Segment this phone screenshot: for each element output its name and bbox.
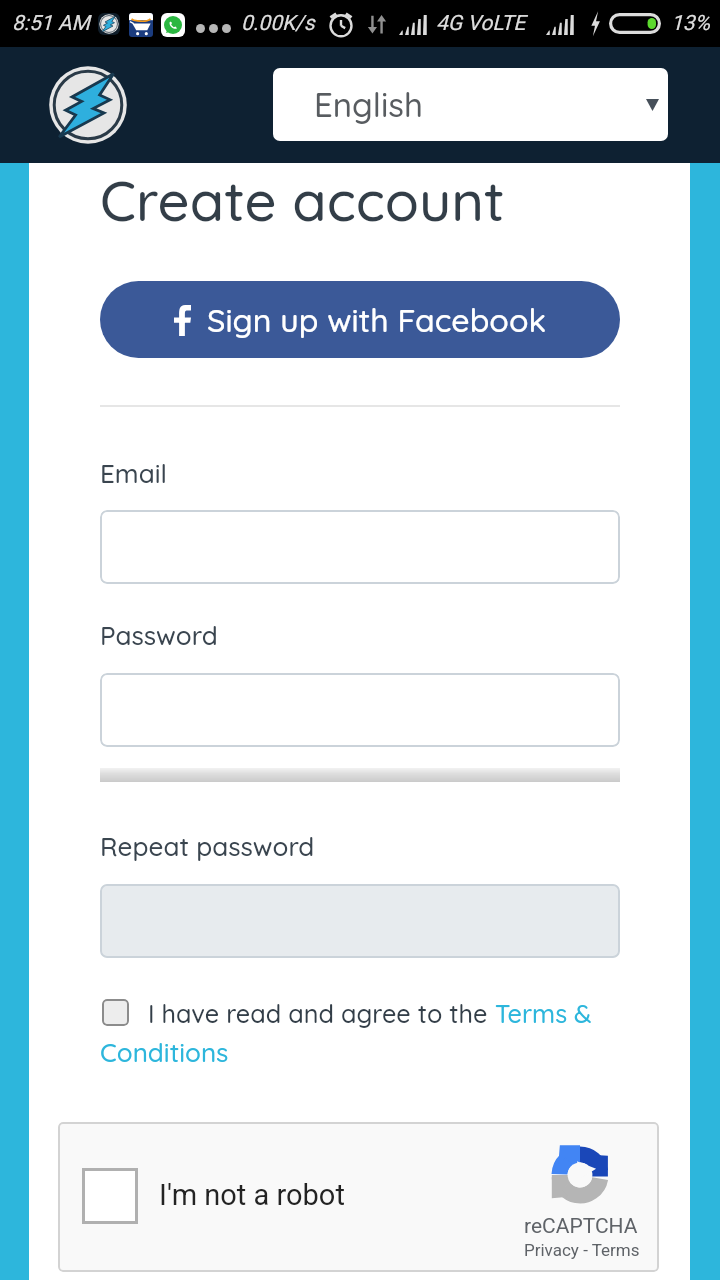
staticText: Password bbox=[100, 619, 218, 652]
staticText: 4G VoLTE bbox=[436, 11, 526, 36]
staticText: Terms & bbox=[495, 998, 592, 1030]
button[interactable]: I have read and agree to the bbox=[148, 998, 592, 1030]
staticText: Repeat password bbox=[100, 830, 315, 863]
button[interactable]: English bbox=[273, 68, 668, 141]
staticText: Email bbox=[100, 457, 167, 490]
staticText: Create account bbox=[100, 165, 505, 235]
button[interactable]: I'm not a robot bbox=[82, 1168, 138, 1224]
button[interactable]: Conditions bbox=[100, 1036, 229, 1069]
staticText: I have read and agree to the bbox=[148, 998, 495, 1030]
staticText: Sign up with Facebook bbox=[207, 300, 547, 340]
staticText: 8:51 AM bbox=[12, 11, 90, 36]
button[interactable]: Electroneum logo bbox=[48, 65, 128, 145]
staticText: reCAPTCHA bbox=[524, 1214, 638, 1239]
button[interactable]: Sign up with Facebook bbox=[100, 281, 620, 358]
staticText: 0.00K/s bbox=[241, 11, 315, 36]
staticText: 13% bbox=[671, 11, 710, 36]
staticText: I'm not a robot bbox=[159, 1178, 345, 1212]
button[interactable] bbox=[100, 510, 620, 584]
staticText: English bbox=[314, 84, 423, 125]
button[interactable]: Agree to terms and conditions bbox=[102, 999, 129, 1026]
button[interactable]: Privacy - Terms bbox=[524, 1240, 640, 1260]
button[interactable] bbox=[100, 884, 620, 958]
button[interactable] bbox=[100, 673, 620, 747]
